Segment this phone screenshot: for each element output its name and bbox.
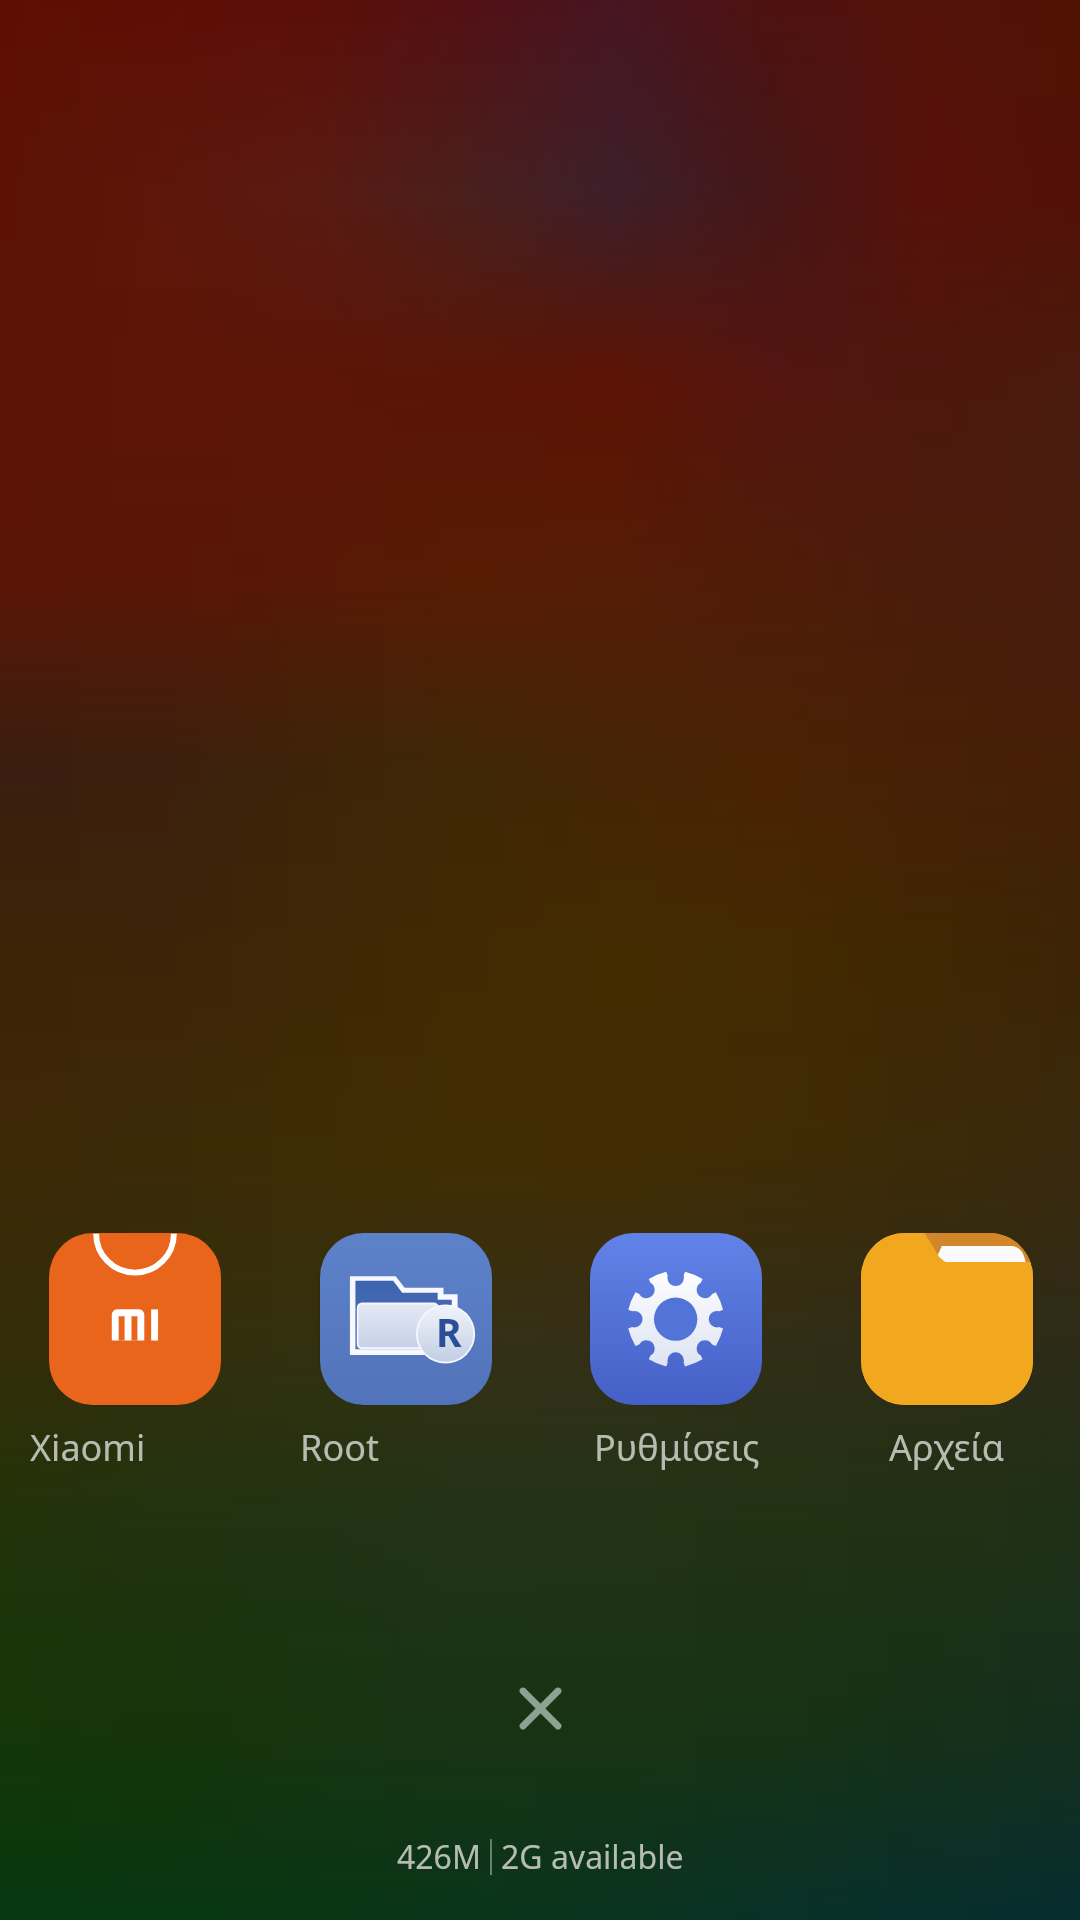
button[interactable]: R — [312, 1227, 500, 1415]
staticText: Root — [300, 1423, 379, 1472]
button[interactable] — [853, 1227, 1041, 1415]
button[interactable]: Close all apps — [470, 1638, 610, 1778]
staticText: 2G available — [501, 1835, 684, 1879]
button[interactable] — [41, 1227, 229, 1415]
staticText: Αρχεία — [889, 1423, 1005, 1472]
staticText: R — [436, 1305, 462, 1358]
staticText: 426M — [397, 1835, 481, 1879]
button[interactable] — [582, 1227, 770, 1415]
staticText: Xiaomi — [30, 1423, 146, 1472]
staticText: Ρυθμίσεις — [594, 1423, 760, 1472]
